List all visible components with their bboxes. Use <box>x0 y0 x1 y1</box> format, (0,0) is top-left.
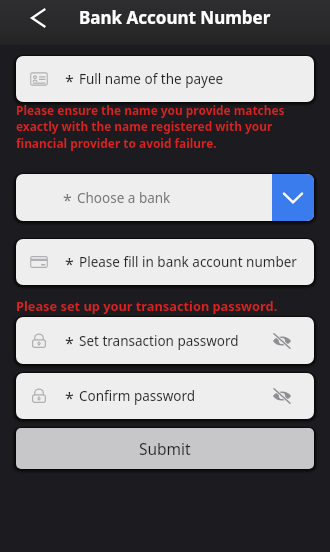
button[interactable]: * <box>16 239 314 285</box>
staticText: * <box>65 253 74 275</box>
button[interactable]: * <box>16 317 314 364</box>
staticText: * <box>65 332 74 354</box>
staticText: Full name of the payee <box>79 70 224 88</box>
staticText: Set transaction password <box>79 332 239 350</box>
staticText: Choose a bank <box>77 189 171 207</box>
button[interactable]: * <box>16 174 314 221</box>
staticText: Please ensure the name you provide match… <box>16 102 285 152</box>
staticText: * <box>65 387 74 409</box>
staticText: * <box>65 70 74 92</box>
button[interactable]: Choose a bank <box>272 174 314 221</box>
staticText: Please fill in bank account number <box>79 253 297 271</box>
button[interactable]: Show password <box>269 383 295 409</box>
staticText: Please set up your transaction password. <box>16 297 278 314</box>
button[interactable]: * <box>16 56 314 102</box>
staticText: Confirm password <box>79 387 196 405</box>
staticText: * <box>63 189 72 211</box>
button[interactable]: * <box>16 373 314 419</box>
staticText: Bank Account Number <box>79 6 271 29</box>
button[interactable]: Show password <box>269 328 295 354</box>
button[interactable]: Back <box>22 2 54 34</box>
button[interactable]: Submit <box>16 428 314 469</box>
staticText: Submit <box>139 438 191 459</box>
